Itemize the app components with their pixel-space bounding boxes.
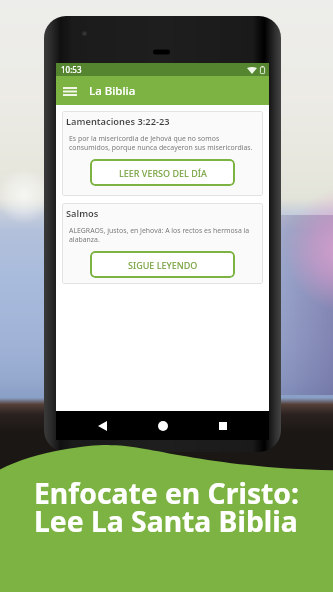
button[interactable]: Home [148, 411, 178, 440]
button[interactable]: Recent apps [208, 411, 238, 440]
staticText: LEER VERSO DEL DÍA [119, 167, 207, 179]
button[interactable]: Back [87, 411, 117, 440]
staticText: Enfocate en Cristo: Lee La Santa Biblia [34, 474, 300, 540]
button[interactable]: LEER VERSO DEL DÍA [90, 159, 235, 186]
button[interactable]: Open navigation menu [58, 79, 82, 103]
staticText: Salmos [66, 207, 99, 220]
button[interactable]: SIGUE LEYENDO [90, 251, 235, 278]
staticText: 10:53 [61, 64, 82, 75]
staticText: Lamentaciones 3:22-23 [66, 115, 170, 128]
staticText: La Biblia [89, 83, 136, 99]
staticText: ALEGRAOS, justos, en Jehová: A los recto… [69, 226, 250, 244]
staticText: Es por la misericordia de Jehová que no … [69, 134, 253, 152]
staticText: SIGUE LEYENDO [128, 259, 198, 271]
